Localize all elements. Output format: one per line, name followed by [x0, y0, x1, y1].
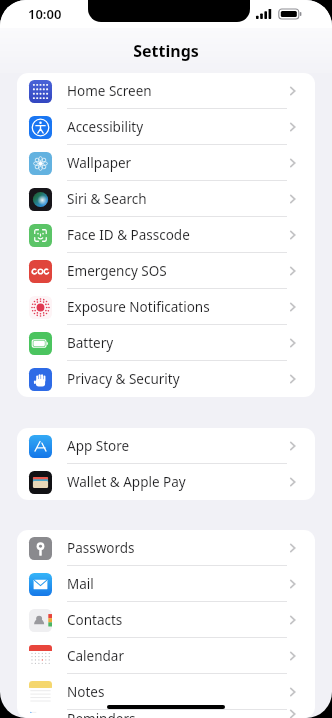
staticText: Contacts — [67, 611, 123, 629]
button[interactable]: Wallpaper — [17, 145, 315, 181]
staticText: Home Screen — [67, 82, 152, 100]
button[interactable]: Siri & Search — [17, 181, 315, 217]
button[interactable]: Mail — [17, 566, 315, 602]
button[interactable]: Battery — [17, 325, 315, 361]
button[interactable]: Privacy & Security — [17, 361, 315, 397]
button[interactable]: Emergency SOS — [17, 253, 315, 289]
staticText: Privacy & Security — [67, 370, 180, 388]
staticText: Exposure Notifications — [67, 298, 210, 316]
staticText: Reminders — [67, 710, 136, 718]
button[interactable]: Exposure Notifications — [17, 289, 315, 325]
staticText: Notes — [67, 683, 105, 701]
button[interactable]: Home Screen — [17, 73, 315, 109]
button[interactable]: Reminders — [17, 710, 315, 718]
button[interactable]: App Store — [17, 428, 315, 464]
staticText: Siri & Search — [67, 190, 147, 208]
staticText: Emergency SOS — [67, 262, 167, 280]
staticText: App Store — [67, 437, 130, 455]
button[interactable]: Calendar — [17, 638, 315, 674]
staticText: Wallet & Apple Pay — [67, 473, 186, 491]
button[interactable]: Passwords — [17, 530, 315, 566]
button[interactable]: Contacts — [17, 602, 315, 638]
staticText: Passwords — [67, 539, 135, 557]
staticText: Wallpaper — [67, 154, 132, 172]
button[interactable]: Accessibility — [17, 109, 315, 145]
button[interactable]: Notes — [17, 674, 315, 710]
button[interactable]: Wallet & Apple Pay — [17, 464, 315, 500]
button[interactable]: Face ID & Passcode — [17, 217, 315, 253]
staticText: Mail — [67, 575, 94, 593]
staticText: Calendar — [67, 647, 124, 665]
staticText: Face ID & Passcode — [67, 226, 190, 244]
staticText: Settings — [133, 40, 199, 62]
staticText: Battery — [67, 334, 114, 352]
staticText: Accessibility — [67, 118, 144, 136]
staticText: 10:00 — [28, 5, 62, 23]
